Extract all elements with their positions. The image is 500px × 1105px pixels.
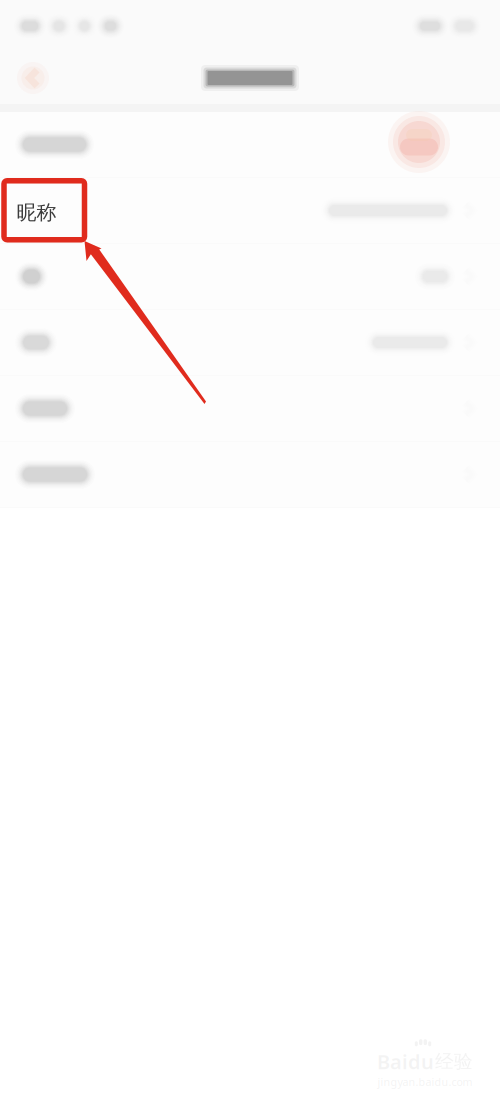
button[interactable]: [0, 310, 500, 376]
staticText: 昵称: [16, 200, 56, 225]
staticText: Baidu: [377, 1048, 434, 1075]
button[interactable]: [0, 376, 500, 442]
button[interactable]: 昵称: [0, 178, 500, 244]
button[interactable]: Back: [10, 54, 56, 102]
staticText: jingyan.baidu.com: [377, 1075, 472, 1089]
button[interactable]: [0, 442, 500, 508]
button[interactable]: [0, 244, 500, 310]
button[interactable]: [0, 112, 500, 178]
staticText: 经验: [435, 1050, 473, 1073]
